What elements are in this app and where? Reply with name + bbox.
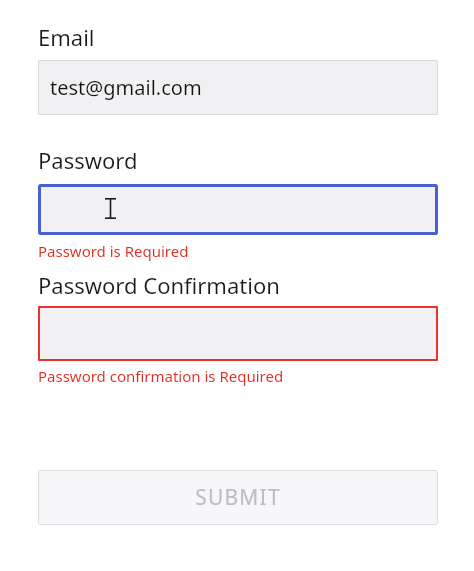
staticText: Password confirmation is Required [38,366,284,386]
button[interactable] [38,306,438,361]
staticText: SUBMIT [195,483,281,512]
button[interactable]: test@gmail.com [38,60,438,115]
staticText: Password Confirmation [38,270,280,300]
staticText: Password is Required [38,241,189,261]
staticText: Email [38,22,95,52]
button[interactable]: SUBMIT [38,470,438,525]
staticText: Password [38,145,138,175]
button[interactable] [38,184,438,235]
staticText: test@gmail.com [50,74,202,101]
